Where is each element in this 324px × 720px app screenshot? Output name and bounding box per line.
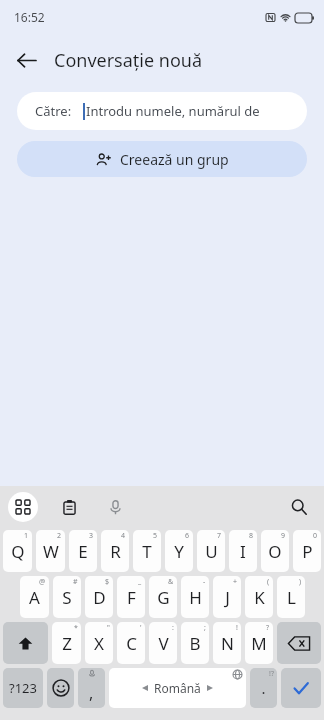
button[interactable]: -: [181, 576, 209, 618]
staticText: 1: [24, 531, 29, 541]
staticText: B: [189, 632, 201, 655]
staticText: &: [168, 577, 174, 587]
staticText: ?: [266, 623, 270, 633]
staticText: I: [240, 540, 246, 563]
staticText: *: [74, 623, 78, 633]
staticText: R: [110, 540, 121, 563]
staticText: @: [39, 577, 46, 587]
staticText: ,: [89, 682, 94, 704]
staticText: ": [107, 623, 110, 633]
staticText: $: [105, 577, 110, 587]
button[interactable]: ?: [245, 622, 273, 664]
button[interactable]: Backspace: [277, 622, 321, 664]
button[interactable]: !?: [250, 668, 277, 708]
button[interactable]: @: [20, 576, 49, 618]
staticText: ): [299, 577, 302, 587]
staticText: V: [158, 632, 169, 655]
button[interactable]: Către:: [17, 92, 307, 130]
staticText: M: [251, 632, 267, 655]
staticText: 3: [89, 531, 94, 541]
button[interactable]: Enter: [281, 668, 321, 708]
button[interactable]: Toolbox: [8, 492, 38, 522]
staticText: J: [225, 586, 230, 609]
staticText: 4: [121, 531, 126, 541]
staticText: X: [94, 632, 104, 655]
staticText: .: [261, 678, 266, 698]
button[interactable]: 6: [165, 530, 193, 572]
button[interactable]: 1: [3, 530, 32, 572]
button[interactable]: &: [149, 576, 177, 618]
staticText: 0: [313, 531, 318, 541]
staticText: A: [29, 586, 40, 609]
staticText: W: [43, 540, 59, 563]
staticText: F: [127, 586, 136, 609]
staticText: Conversație nouă: [54, 48, 203, 73]
button[interactable]: 7: [197, 530, 225, 572]
button[interactable]: ;: [181, 622, 209, 664]
staticText: 2: [57, 531, 62, 541]
button[interactable]: 5: [133, 530, 161, 572]
button[interactable]: ?123: [3, 668, 43, 708]
button[interactable]: *: [52, 622, 81, 664]
staticText: U: [205, 540, 218, 563]
button[interactable]: $: [85, 576, 113, 618]
staticText: _: [138, 577, 142, 587]
staticText: S: [62, 586, 72, 609]
staticText: 16:52: [14, 9, 45, 25]
staticText: P: [302, 540, 313, 563]
staticText: (: [267, 577, 270, 587]
staticText: +: [233, 577, 238, 587]
button[interactable]: Back: [6, 40, 46, 80]
staticText: 9: [281, 531, 286, 541]
button[interactable]: Shift: [3, 622, 48, 664]
button[interactable]: (: [245, 576, 273, 618]
staticText: -: [203, 577, 206, 587]
staticText: #: [73, 577, 78, 587]
staticText: H: [189, 586, 202, 609]
button[interactable]: Search: [282, 490, 316, 524]
button[interactable]: 9: [261, 530, 289, 572]
staticText: Introdu numele, numărul de telefon …: [86, 102, 293, 120]
button[interactable]: 0: [293, 530, 321, 572]
button[interactable]: ": [85, 622, 113, 664]
staticText: :: [172, 623, 174, 633]
staticText: Către:: [35, 102, 72, 120]
button[interactable]: Clipboard: [54, 492, 84, 522]
staticText: K: [254, 586, 265, 609]
staticText: 7: [217, 531, 222, 541]
staticText: G: [157, 586, 170, 609]
button[interactable]: 4: [101, 530, 129, 572]
staticText: O: [268, 540, 282, 563]
button[interactable]: Voice input: [100, 492, 130, 522]
button[interactable]: !: [213, 622, 241, 664]
staticText: D: [93, 586, 106, 609]
button[interactable]: ,: [78, 668, 105, 708]
staticText: Y: [174, 540, 184, 563]
staticText: E: [78, 540, 88, 563]
staticText: Română: [154, 680, 201, 696]
button[interactable]: #: [53, 576, 81, 618]
staticText: 5: [153, 531, 158, 541]
staticText: ;: [204, 623, 206, 633]
staticText: Q: [11, 540, 25, 563]
staticText: Z: [62, 632, 72, 655]
staticText: L: [287, 586, 296, 609]
button[interactable]: Română: [109, 668, 246, 708]
button[interactable]: Emoji: [47, 668, 74, 708]
button[interactable]: 2: [36, 530, 65, 572]
staticText: Creează un grup: [120, 150, 229, 169]
button[interactable]: Creează un grup: [17, 141, 307, 177]
button[interactable]: _: [117, 576, 145, 618]
button[interactable]: +: [213, 576, 241, 618]
staticText: ?123: [9, 679, 37, 697]
staticText: 8: [249, 531, 254, 541]
staticText: N: [221, 632, 234, 655]
staticText: T: [142, 540, 152, 563]
staticText: 6: [185, 531, 190, 541]
button[interactable]: 8: [229, 530, 257, 572]
staticText: ': [140, 623, 142, 633]
button[interactable]: 3: [69, 530, 97, 572]
button[interactable]: ': [117, 622, 145, 664]
button[interactable]: :: [149, 622, 177, 664]
button[interactable]: ): [277, 576, 305, 618]
